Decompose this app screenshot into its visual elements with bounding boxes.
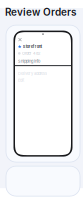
staticText: Storefront — [23, 44, 42, 49]
button[interactable]: Close — [15, 36, 24, 43]
staticText: Edit — [18, 78, 24, 83]
staticText: Order 482 — [22, 51, 40, 56]
staticText: Shipping info — [18, 59, 40, 64]
staticText: Delivery address — [18, 71, 47, 76]
staticText: Review Orders — [5, 6, 76, 18]
